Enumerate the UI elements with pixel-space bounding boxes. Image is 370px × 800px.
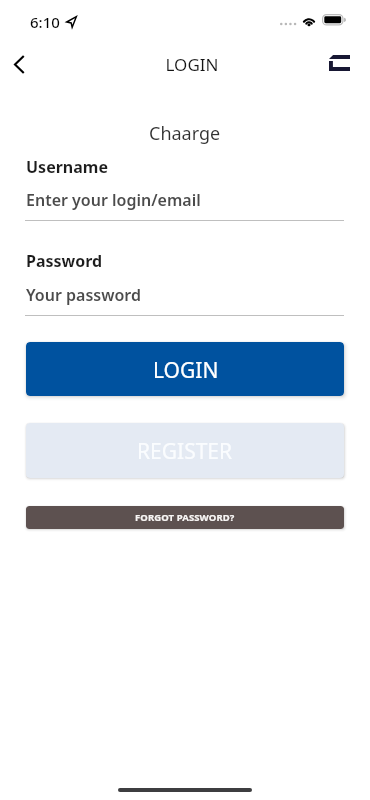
staticText: Chaarge — [149, 121, 221, 146]
staticText: Your password — [26, 284, 141, 306]
staticText: LOGIN — [153, 356, 219, 385]
staticText: Username — [26, 156, 108, 178]
button[interactable]: LOGIN — [26, 342, 344, 396]
staticText: Enter your login/email — [26, 189, 201, 211]
staticText: 6:10 — [30, 12, 60, 32]
staticText: FORGOT PASSWORD? — [135, 511, 235, 524]
staticText: REGISTER — [137, 437, 233, 466]
staticText: LOGIN — [7, 53, 370, 76]
button[interactable]: Enter your login/email — [25, 185, 344, 221]
button[interactable]: Back — [0, 44, 40, 88]
button[interactable]: FORGOT PASSWORD? — [26, 506, 344, 529]
button[interactable]: Chaarge logo — [326, 44, 370, 88]
button[interactable]: REGISTER — [26, 423, 344, 478]
staticText: Password — [26, 250, 103, 272]
button[interactable]: Your password — [25, 280, 344, 316]
